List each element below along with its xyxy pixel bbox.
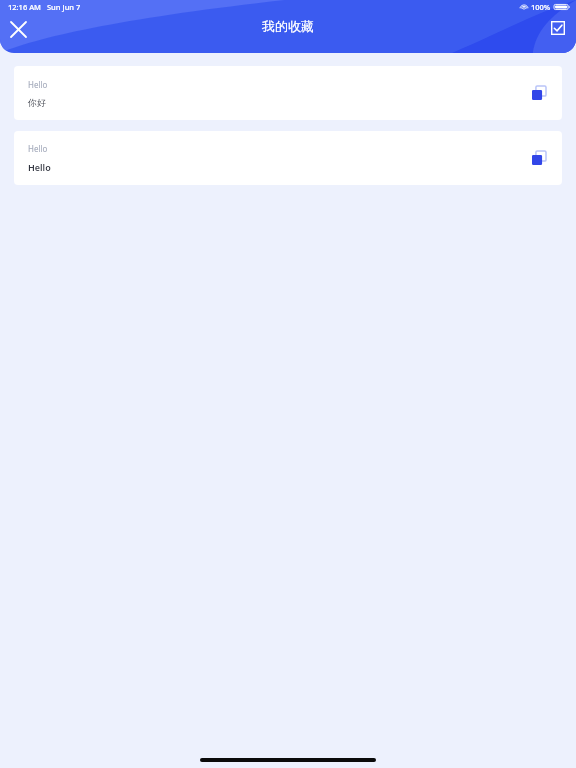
staticText: Hello <box>28 143 48 154</box>
staticText: Hello <box>28 79 48 90</box>
staticText: Hello <box>28 161 51 173</box>
button[interactable]: Select all <box>546 16 570 40</box>
button[interactable]: Hello <box>14 66 562 120</box>
button[interactable]: Copy <box>526 145 552 171</box>
staticText: 你好 <box>28 97 46 108</box>
staticText: 100% <box>531 2 551 12</box>
button[interactable]: Hello <box>14 131 562 185</box>
staticText: 12:16 AM <box>8 2 41 12</box>
staticText: Sun Jun 7 <box>47 2 81 12</box>
button[interactable]: Close <box>4 15 32 43</box>
button[interactable]: Copy <box>526 80 552 106</box>
staticText: 我的收藏 <box>262 18 314 34</box>
